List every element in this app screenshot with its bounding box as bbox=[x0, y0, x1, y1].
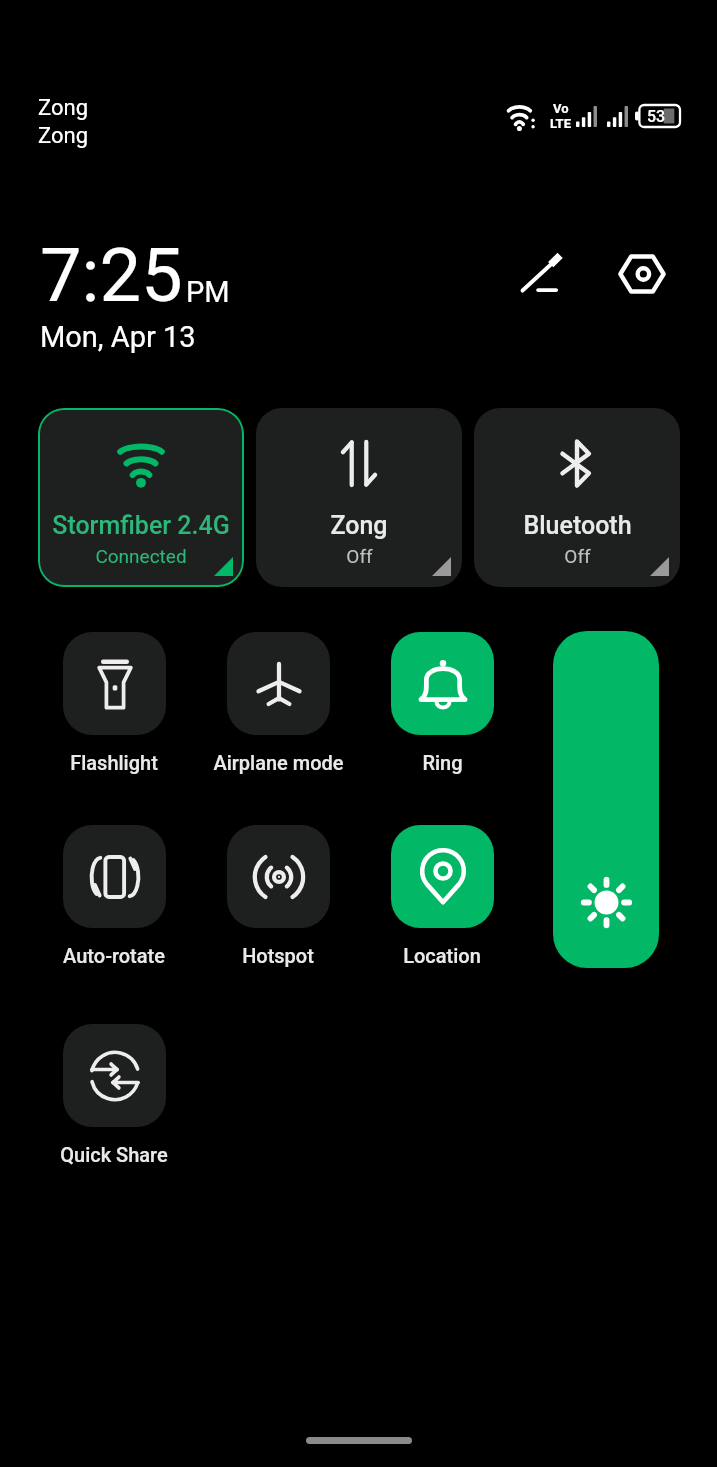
staticText: Airplane mode bbox=[213, 751, 344, 774]
button[interactable]: Settings bbox=[612, 244, 672, 304]
button[interactable]: Stormfiber 2.4G bbox=[38, 408, 244, 587]
button[interactable]: Zong bbox=[256, 408, 462, 587]
staticText: Zong bbox=[330, 511, 388, 540]
staticText: Zong bbox=[38, 123, 89, 149]
staticText: Zong bbox=[38, 95, 89, 121]
staticText: Vo bbox=[553, 101, 569, 116]
staticText: PM bbox=[186, 275, 230, 309]
staticText: Connected bbox=[95, 545, 187, 567]
button[interactable] bbox=[63, 1024, 166, 1127]
staticText: LTE bbox=[550, 116, 571, 131]
staticText: 53 bbox=[647, 107, 666, 126]
staticText: Flashlight bbox=[70, 751, 158, 774]
button[interactable] bbox=[391, 632, 494, 735]
button[interactable] bbox=[227, 632, 330, 735]
staticText: Ring bbox=[422, 751, 463, 774]
staticText: 7:25 bbox=[40, 232, 183, 319]
button[interactable]: Edit tiles bbox=[510, 244, 570, 304]
button[interactable]: Brightness bbox=[553, 631, 659, 968]
button[interactable] bbox=[391, 825, 494, 928]
staticText: Stormfiber 2.4G bbox=[52, 511, 230, 540]
staticText: Mon, Apr 13 bbox=[40, 320, 196, 354]
staticText: Hotspot bbox=[242, 944, 314, 967]
staticText: Location bbox=[403, 944, 481, 967]
button[interactable] bbox=[63, 632, 166, 735]
staticText: Bluetooth bbox=[523, 511, 632, 540]
staticText: Auto-rotate bbox=[63, 944, 165, 967]
staticText: Off bbox=[564, 545, 591, 567]
button[interactable] bbox=[63, 825, 166, 928]
staticText: Quick Share bbox=[60, 1143, 168, 1166]
button[interactable]: Bluetooth bbox=[474, 408, 680, 587]
button[interactable] bbox=[227, 825, 330, 928]
staticText: Off bbox=[346, 545, 373, 567]
